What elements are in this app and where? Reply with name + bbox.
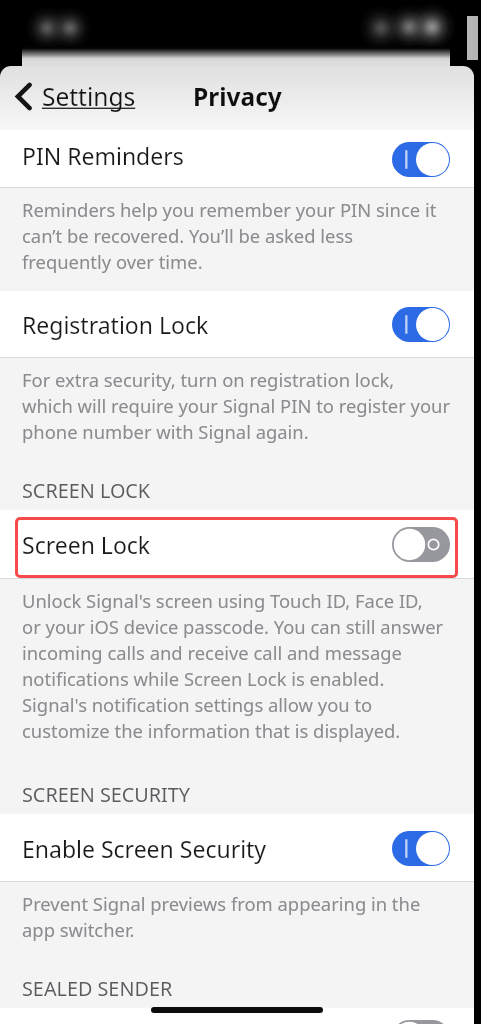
staticText: For extra security, turn on registration… — [22, 367, 451, 444]
button[interactable]: Registration Lock — [0, 291, 474, 358]
button[interactable]: Enable Screen Security — [0, 814, 474, 882]
other: Toggle, off — [392, 527, 450, 562]
staticText: SEALED SENDER — [22, 975, 173, 1002]
button[interactable]: Screen Lock — [0, 510, 474, 579]
staticText: SCREEN LOCK — [22, 477, 151, 504]
staticText: Prevent Signal previews from appearing i… — [22, 891, 421, 942]
other: Toggle, on — [392, 307, 450, 342]
staticText: Privacy — [193, 80, 282, 113]
staticText: Reminders help you remember your PIN sin… — [22, 197, 437, 274]
staticText: Settings — [42, 80, 136, 113]
staticText: Enable Screen Security — [22, 833, 267, 864]
other: Toggle, off — [392, 1020, 450, 1024]
staticText: Unlock Signal's screen using Touch ID, F… — [22, 588, 444, 743]
staticText: Registration Lock — [22, 309, 209, 340]
staticText: SCREEN SECURITY — [22, 781, 190, 808]
button[interactable]: Back to Settings — [0, 70, 146, 122]
other: Toggle, on — [392, 831, 450, 866]
button[interactable]: PIN Reminders — [0, 130, 474, 188]
staticText: PIN Reminders — [22, 140, 184, 171]
other: Toggle, on — [392, 142, 450, 177]
staticText: Screen Lock — [22, 529, 151, 560]
button[interactable]: Display Indicators — [0, 1008, 474, 1024]
other: Back to Settings — [15, 83, 32, 110]
